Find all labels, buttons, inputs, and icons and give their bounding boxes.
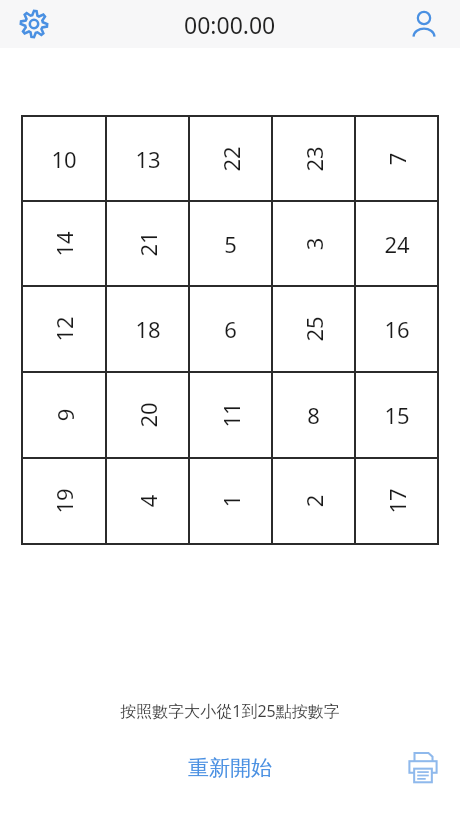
staticText: 22 [216,146,246,172]
staticText: 20 [133,402,163,428]
button[interactable]: 25 [273,287,354,371]
staticText: 13 [135,144,161,174]
button[interactable]: 3 [273,202,354,285]
staticText: 16 [384,314,410,344]
staticText: 4 [132,494,162,507]
staticText: 2 [298,494,328,507]
button[interactable]: 5 [190,202,271,285]
staticText: 21 [133,231,163,257]
staticText: 00:00.00 [184,9,276,40]
button[interactable]: 24 [356,202,437,285]
staticText: 1 [215,494,245,507]
staticText: 24 [384,229,410,259]
button[interactable]: 20 [107,373,188,457]
button[interactable]: 16 [356,287,437,371]
button[interactable]: 15 [356,373,437,457]
staticText: 18 [135,314,161,344]
button[interactable]: 13 [107,117,188,200]
button[interactable]: Print [400,745,446,791]
button[interactable]: 10 [23,117,105,200]
staticText: 3 [298,237,328,250]
button[interactable]: 4 [107,459,188,543]
button[interactable]: 11 [190,373,271,457]
staticText: 按照數字大小從1到25點按數字 [0,700,460,722]
button[interactable]: 19 [23,459,105,543]
staticText: 15 [384,400,410,430]
button[interactable]: 18 [107,287,188,371]
button[interactable]: 1 [190,459,271,543]
button[interactable]: 8 [273,373,354,457]
staticText: 14 [49,231,79,257]
button[interactable]: 9 [23,373,105,457]
staticText: 17 [382,488,412,514]
staticText: 11 [216,402,246,428]
staticText: 23 [299,146,329,172]
button[interactable]: 12 [23,287,105,371]
button[interactable]: Settings [12,2,56,46]
button[interactable]: 14 [23,202,105,285]
staticText: 19 [49,488,79,514]
staticText: 10 [51,144,77,174]
staticText: 7 [381,152,411,165]
staticText: 5 [224,229,237,259]
button[interactable]: 7 [356,117,437,200]
staticText: 12 [49,316,79,342]
staticText: 9 [49,408,79,421]
button[interactable]: 17 [356,459,437,543]
button[interactable]: 重新開始 [170,749,290,787]
button[interactable]: 6 [190,287,271,371]
staticText: 6 [224,314,237,344]
button[interactable]: Profile [402,2,446,46]
staticText: 重新開始 [188,755,272,781]
button[interactable]: 21 [107,202,188,285]
staticText: 8 [307,400,320,430]
staticText: 25 [299,316,329,342]
button[interactable]: 22 [190,117,271,200]
button[interactable]: 23 [273,117,354,200]
button[interactable]: 2 [273,459,354,543]
